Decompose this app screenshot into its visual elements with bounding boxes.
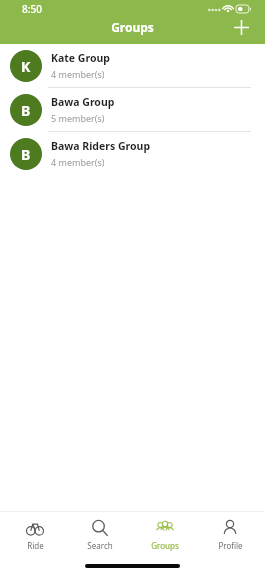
button[interactable]: B [0, 132, 265, 175]
staticText: Ride [27, 540, 44, 551]
staticText: Kate Group [51, 51, 110, 65]
button[interactable]: B [0, 88, 265, 132]
staticText: Groups [151, 540, 179, 551]
staticText: 5 member(s) [51, 112, 105, 124]
staticText: 8:50 [22, 2, 42, 16]
staticText: B [21, 101, 31, 120]
button[interactable]: Profile [200, 519, 260, 551]
button[interactable]: Add group [227, 13, 255, 41]
staticText: Profile [218, 540, 243, 551]
staticText: Search [87, 540, 113, 551]
button[interactable]: Search [70, 519, 130, 551]
staticText: Bawa Group [51, 95, 115, 109]
staticText: K [21, 57, 31, 76]
staticText: B [21, 145, 31, 164]
staticText: 4 member(s) [51, 68, 105, 80]
staticText: Bawa Riders Group [51, 139, 151, 153]
button[interactable]: Ride [5, 519, 65, 551]
button[interactable]: K [0, 44, 265, 88]
button[interactable]: Groups [135, 519, 195, 551]
staticText: Groups [111, 19, 154, 35]
staticText: 4 member(s) [51, 156, 105, 168]
